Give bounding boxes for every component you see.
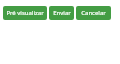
button[interactable]: Enviar [49,6,74,20]
staticText: Pré visualizar [6,9,44,17]
staticText: Cancelar [81,9,106,17]
button[interactable]: Cancelar [76,6,111,20]
button[interactable]: Pré visualizar [3,6,47,20]
staticText: Enviar [53,9,71,17]
